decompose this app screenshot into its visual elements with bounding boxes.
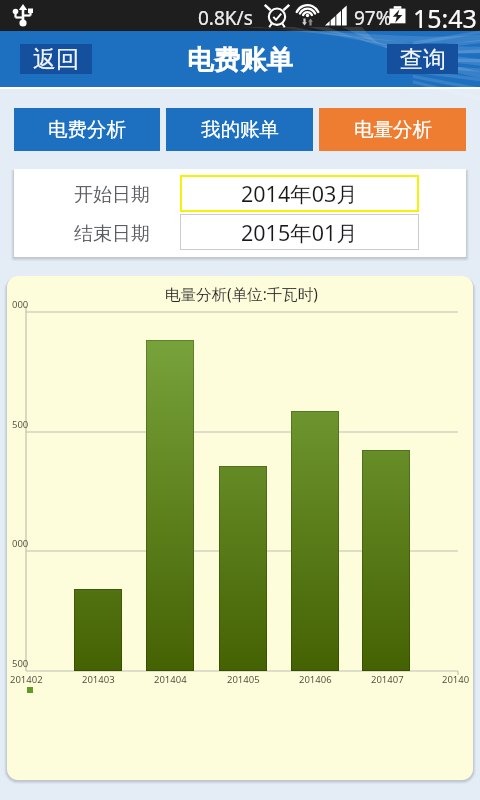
staticText: 2015年01月	[241, 218, 358, 247]
staticText: 201402	[10, 673, 43, 686]
staticText: 201406	[299, 673, 332, 686]
staticText: 500	[12, 418, 29, 431]
button[interactable]: 2015年01月	[180, 214, 419, 250]
staticText: 201404	[154, 673, 187, 686]
button[interactable]: 2014年03月	[180, 175, 419, 212]
staticText: 返回	[33, 45, 79, 74]
staticText: 电费分析	[48, 117, 126, 142]
staticText: 201405	[227, 673, 260, 686]
staticText: 结束日期	[74, 222, 150, 246]
staticText: 电量分析	[354, 117, 432, 142]
staticText: 0.8K/s	[198, 5, 253, 31]
button[interactable]: 查询	[387, 44, 458, 74]
staticText: 开始日期	[74, 183, 150, 207]
staticText: 500	[12, 657, 29, 670]
staticText: 电量分析(单位:千瓦时)	[165, 283, 318, 304]
staticText: 电费账单	[187, 43, 293, 76]
button[interactable]: 电费分析	[14, 108, 160, 151]
staticText: 15:43	[413, 1, 477, 32]
staticText: 20140	[442, 673, 470, 686]
staticText: 201403	[82, 673, 115, 686]
button[interactable]: 返回	[20, 44, 92, 74]
staticText: 201407	[371, 673, 404, 686]
staticText: 000	[12, 298, 29, 311]
staticText: 2014年03月	[241, 179, 358, 208]
staticText: 000	[12, 537, 29, 550]
staticText: 查询	[400, 45, 446, 74]
staticText: 我的账单	[201, 117, 279, 142]
button[interactable]: 我的账单	[166, 108, 313, 151]
staticText: 97%	[354, 5, 392, 31]
button[interactable]: 电量分析	[319, 108, 466, 151]
